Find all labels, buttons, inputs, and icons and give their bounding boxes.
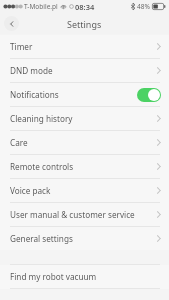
- staticText: Remote controls: [10, 161, 74, 172]
- staticText: User manual & customer service: [10, 209, 135, 220]
- button[interactable]: Care: [0, 131, 169, 154]
- button[interactable]: User manual & customer service: [0, 203, 169, 226]
- button[interactable]: Cleaning history: [0, 107, 169, 130]
- staticText: Notifications: [10, 89, 59, 100]
- staticText: 48%: [137, 2, 150, 11]
- button[interactable]: Notifications: [0, 83, 169, 106]
- button[interactable]: DND mode: [0, 59, 169, 82]
- staticText: Find my robot vacuum: [10, 271, 97, 282]
- staticText: DND mode: [10, 65, 53, 76]
- staticText: 08:34: [75, 2, 95, 12]
- staticText: Care: [10, 137, 28, 148]
- button[interactable]: Remote controls: [0, 155, 169, 178]
- staticText: Voice pack: [10, 185, 51, 196]
- staticText: Settings: [67, 18, 102, 30]
- button[interactable]: General settings: [0, 227, 169, 250]
- button[interactable]: Voice pack: [0, 179, 169, 202]
- staticText: General settings: [10, 233, 73, 244]
- button[interactable]: Back: [4, 16, 19, 31]
- staticText: Cleaning history: [10, 113, 73, 124]
- staticText: T-Mobile.pl: [24, 2, 58, 11]
- staticText: Timer: [10, 41, 33, 52]
- button[interactable]: Notifications toggle: [137, 88, 161, 102]
- button[interactable]: Timer: [0, 35, 169, 58]
- button[interactable]: Find my robot vacuum: [0, 265, 169, 288]
